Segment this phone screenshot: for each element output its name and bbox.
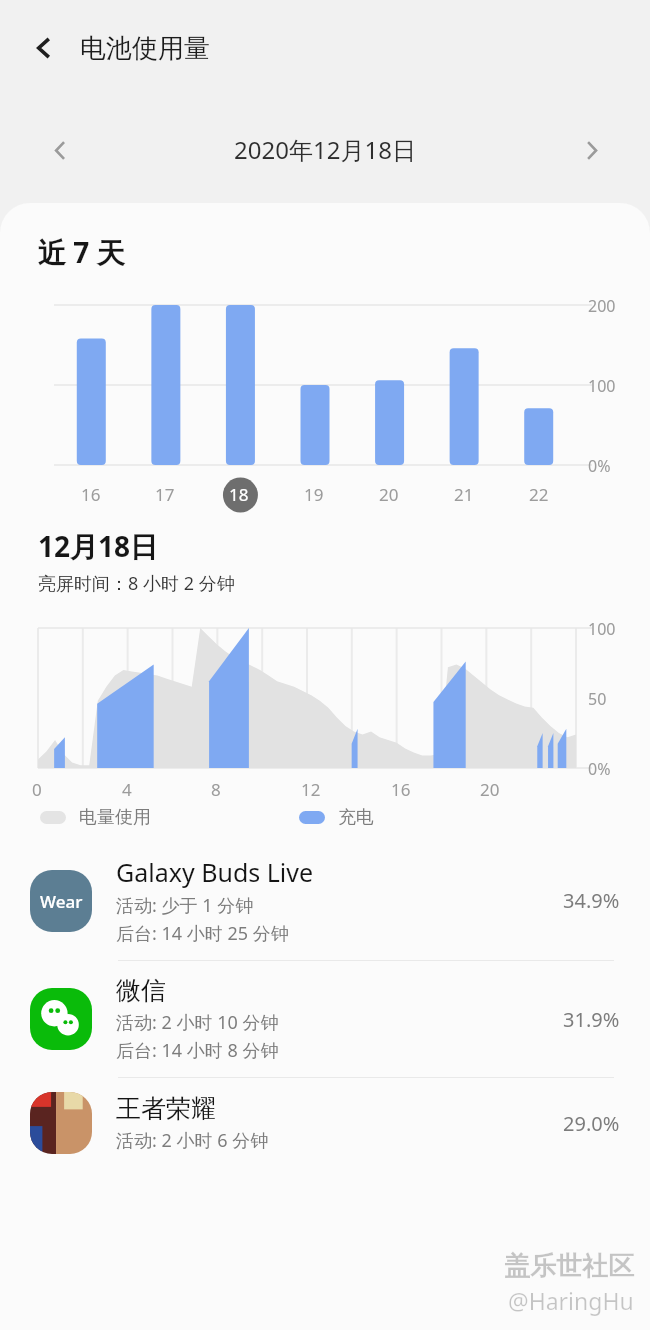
staticText: 8 bbox=[211, 778, 221, 801]
staticText: 50 bbox=[588, 688, 607, 710]
staticText: 19 bbox=[304, 483, 324, 506]
staticText: 0% bbox=[588, 455, 611, 477]
staticText: 200 bbox=[588, 295, 616, 317]
button[interactable]: Wear bbox=[0, 841, 650, 960]
staticText: 后台: 14 小时 8 分钟 bbox=[116, 1038, 279, 1063]
button[interactable]: Next day bbox=[570, 129, 612, 171]
staticText: Wear bbox=[40, 890, 83, 913]
staticText: 0 bbox=[32, 778, 42, 801]
staticText: 100 bbox=[588, 375, 616, 397]
staticText: 充电 bbox=[338, 806, 374, 829]
staticText: 34.9% bbox=[563, 887, 620, 914]
button[interactable]: Previous day bbox=[38, 129, 80, 171]
staticText: 微信 bbox=[116, 975, 166, 1006]
staticText: Galaxy Buds Live bbox=[116, 855, 314, 889]
staticText: @HaringHu bbox=[508, 1285, 634, 1316]
staticText: 20 bbox=[480, 778, 500, 801]
staticText: 盖乐世社区 bbox=[504, 1250, 634, 1283]
staticText: 电量使用 bbox=[79, 806, 151, 829]
staticText: 后台: 14 小时 25 分钟 bbox=[116, 921, 289, 946]
staticText: 31.9% bbox=[563, 1006, 620, 1033]
staticText: 12月18日 bbox=[38, 527, 159, 565]
staticText: 活动: 少于 1 分钟 bbox=[116, 893, 254, 918]
staticText: 20 bbox=[379, 483, 399, 506]
staticText: 王者荣耀 bbox=[116, 1093, 216, 1124]
staticText: 18 bbox=[229, 483, 249, 506]
staticText: 活动: 2 小时 6 分钟 bbox=[116, 1128, 269, 1153]
button[interactable]: 王者荣耀 bbox=[0, 1078, 650, 1168]
staticText: 活动: 2 小时 10 分钟 bbox=[116, 1010, 279, 1035]
button[interactable]: 微信 bbox=[0, 961, 650, 1077]
staticText: 16 bbox=[391, 778, 411, 801]
staticText: 亮屏时间：8 小时 2 分钟 bbox=[38, 571, 235, 596]
staticText: 16 bbox=[81, 483, 101, 506]
staticText: 0% bbox=[588, 758, 611, 780]
staticText: 近 7 天 bbox=[38, 233, 125, 271]
staticText: 22 bbox=[529, 483, 549, 506]
staticText: 4 bbox=[122, 778, 132, 801]
staticText: 12 bbox=[301, 778, 321, 801]
staticText: 2020年12月18日 bbox=[80, 133, 570, 166]
staticText: 29.0% bbox=[563, 1110, 620, 1137]
staticText: 电池使用量 bbox=[80, 32, 210, 65]
staticText: 21 bbox=[454, 483, 474, 506]
button[interactable]: Back bbox=[20, 24, 68, 72]
staticText: 17 bbox=[155, 483, 175, 506]
staticText: 100 bbox=[588, 618, 616, 640]
